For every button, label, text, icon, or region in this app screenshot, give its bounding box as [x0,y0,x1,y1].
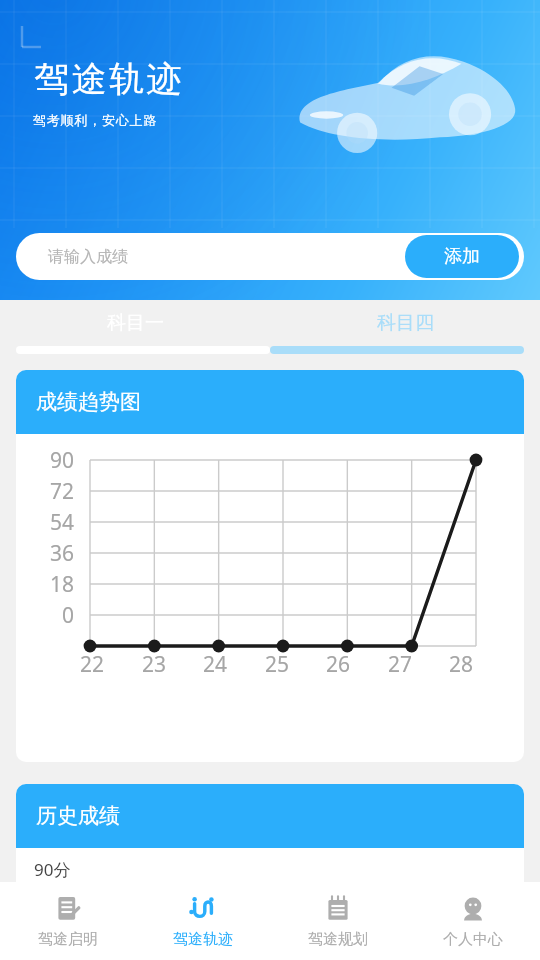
staticText: 90分 [34,858,71,881]
staticText: 90 [42,446,74,475]
button[interactable]: 科目四 [270,300,540,346]
staticText: 25 [263,650,291,679]
staticText: 36 [42,539,74,568]
staticText: 个人中心 [443,930,503,949]
staticText: 22 [78,650,106,679]
button[interactable]: 驾途轨迹 [135,882,270,960]
button[interactable]: 驾途规划 [270,882,405,960]
button[interactable]: 请输入成绩 [16,233,524,280]
staticText: 54 [42,508,74,537]
staticText: 科目四 [377,311,434,335]
staticText: 18 [42,570,74,599]
staticText: 驾途规划 [308,930,368,949]
staticText: 24 [201,650,229,679]
staticText: 驾途轨迹 [33,57,183,101]
staticText: 28 [447,650,475,679]
staticText: 72 [42,477,74,506]
staticText: 请输入成绩 [48,247,405,267]
staticText: 27 [386,650,414,679]
staticText: 驾考顺利，安心上路 [33,112,158,128]
staticText: 0 [42,601,74,630]
staticText: 驾途启明 [38,930,98,949]
staticText: 添加 [444,245,480,268]
staticText: 26 [324,650,352,679]
staticText: 驾途轨迹 [173,930,233,949]
button[interactable]: 驾途启明 [0,882,135,960]
staticText: 历史成绩 [36,803,120,829]
button[interactable]: 个人中心 [405,882,540,960]
staticText: 成绩趋势图 [36,389,141,415]
button[interactable]: 添加 [405,235,519,278]
staticText: 科目一 [107,311,164,335]
staticText: 23 [140,650,168,679]
